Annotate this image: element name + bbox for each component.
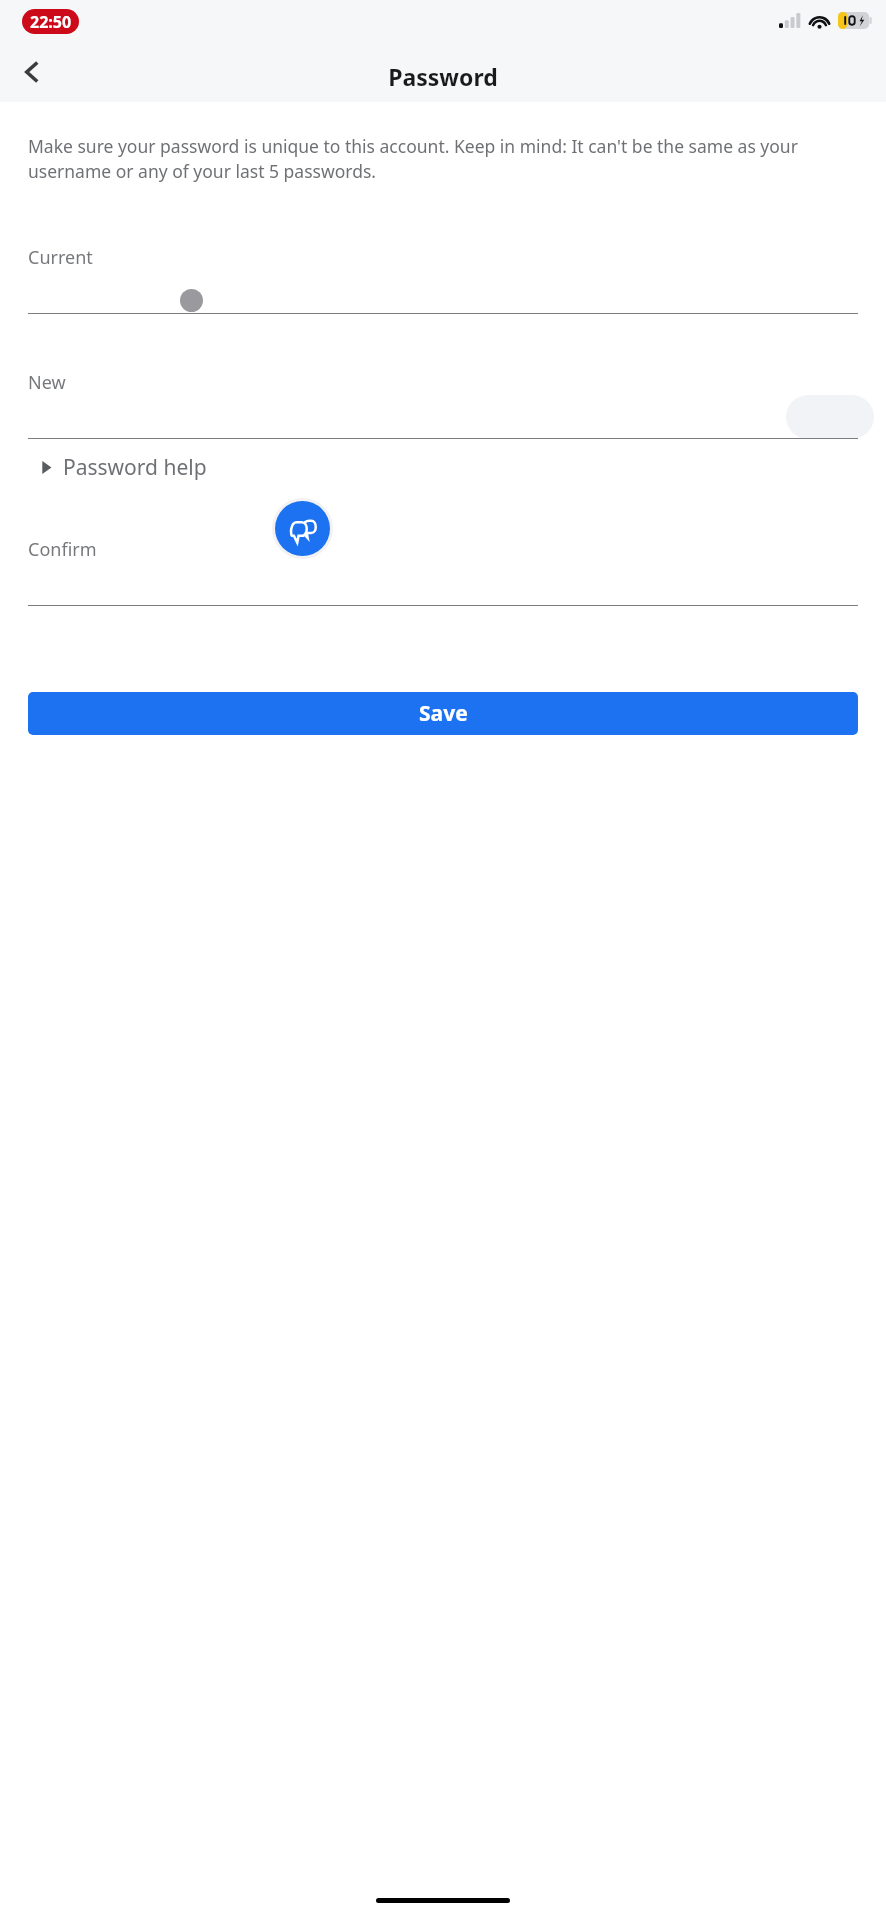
button[interactable] [0,270,886,314]
staticText: Current [28,245,93,270]
button[interactable] [0,395,886,439]
staticText: Password help [63,453,207,482]
staticText: New [28,370,66,395]
button[interactable]: Back [10,50,54,94]
staticText: Confirm [28,537,97,562]
staticText: 22:50 [30,11,72,33]
button[interactable] [0,562,886,606]
staticText: Make sure your password is unique to thi… [28,134,858,183]
staticText: Save [419,699,468,728]
button[interactable]: Save [28,692,858,735]
button[interactable]: Chat support [275,501,330,556]
staticText: Password [388,61,498,92]
button[interactable]: Password help [40,447,207,487]
